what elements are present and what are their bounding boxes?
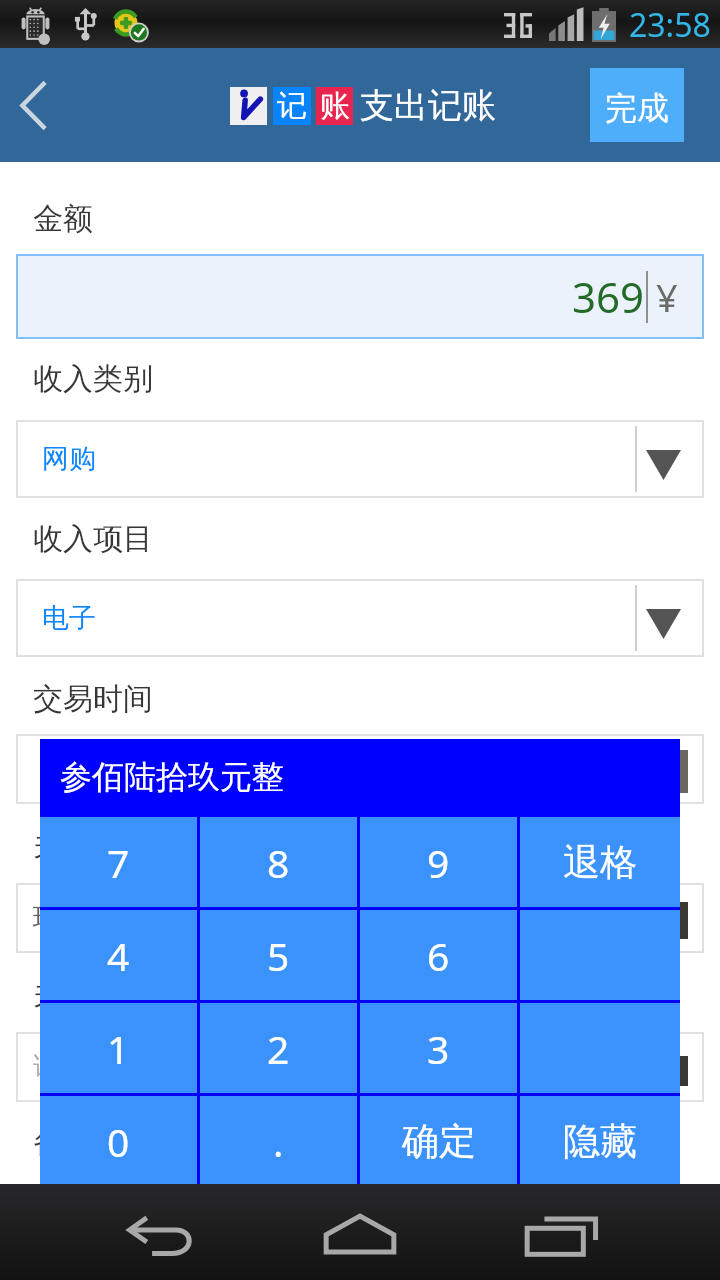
button[interactable]: .	[200, 1096, 357, 1186]
button[interactable]: 请选择人员	[16, 1032, 704, 1102]
staticText: 网购	[42, 442, 96, 476]
staticText: 关联人员	[33, 975, 153, 1013]
button[interactable]: 8	[200, 817, 357, 907]
button[interactable]: Back	[0, 48, 66, 162]
button[interactable]: 0	[40, 1096, 197, 1186]
button[interactable]: 1	[40, 1003, 197, 1093]
staticText: 关联账户	[33, 826, 153, 864]
staticText: .	[273, 1115, 284, 1168]
button[interactable]: Home	[305, 1194, 415, 1270]
button[interactable]: 现金账户	[16, 883, 704, 953]
staticText: 9	[427, 836, 450, 889]
staticText: 确定	[402, 1118, 476, 1165]
button[interactable]: 确定	[360, 1096, 517, 1186]
button[interactable]: Back	[105, 1194, 215, 1270]
staticText: 收入项目	[33, 520, 153, 558]
staticText: 2016-08-07	[42, 751, 183, 788]
staticText: 收入类别	[33, 360, 153, 398]
staticText: 退格	[563, 839, 637, 886]
button[interactable]: 电子	[16, 579, 704, 657]
button[interactable]: Recent apps	[505, 1194, 615, 1270]
button[interactable]: 9	[360, 817, 517, 907]
staticText: 完成	[605, 88, 669, 128]
staticText: 23:58	[629, 3, 711, 47]
staticText: 金额	[33, 200, 93, 238]
staticText: 备注	[33, 1124, 93, 1162]
staticText: ¥	[656, 271, 678, 323]
button[interactable]: 4	[40, 910, 197, 1000]
button[interactable]: 3	[360, 1003, 517, 1093]
button[interactable]: 网购	[16, 420, 704, 498]
button[interactable]: 369	[16, 254, 704, 339]
staticText: 支出记账	[360, 84, 496, 127]
staticText: 交易时间	[33, 680, 153, 718]
staticText: 参佰陆拾玖元整	[60, 757, 284, 797]
button[interactable]: 退格	[520, 817, 680, 907]
staticText: 0	[107, 1115, 130, 1168]
button[interactable]: 2016-08-07	[16, 734, 704, 804]
staticText: 1	[107, 1022, 130, 1075]
staticText: 5	[267, 929, 290, 982]
button[interactable]: 6	[360, 910, 517, 1000]
button[interactable]: 2	[200, 1003, 357, 1093]
staticText: 现金账户	[33, 901, 141, 935]
staticText: 4	[107, 929, 130, 982]
staticText: 电子	[42, 601, 96, 635]
staticText: 7	[107, 836, 130, 889]
staticText: 6	[427, 929, 450, 982]
staticText: 账	[320, 87, 350, 125]
staticText: 3	[427, 1022, 450, 1075]
staticText: 8	[267, 836, 290, 889]
button[interactable]: 5	[200, 910, 357, 1000]
staticText: 记	[277, 87, 307, 125]
button[interactable]: 隐藏	[520, 1096, 680, 1186]
staticText: 2	[267, 1022, 290, 1075]
staticText: 隐藏	[563, 1118, 637, 1165]
staticText: 请选择人员	[33, 1050, 168, 1084]
button[interactable]: 完成	[590, 68, 684, 142]
staticText: 369	[572, 268, 645, 325]
button[interactable]: 7	[40, 817, 197, 907]
